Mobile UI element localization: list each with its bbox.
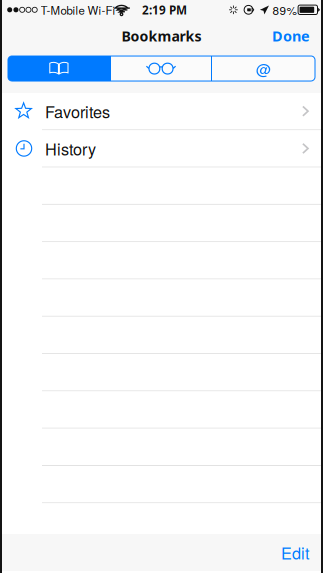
staticText: 89%	[272, 1, 296, 18]
button[interactable]: Shared Links	[212, 56, 315, 81]
button[interactable]: Edit	[281, 541, 321, 564]
button[interactable]: History	[2, 130, 321, 168]
button[interactable]: Favorites	[2, 93, 321, 130]
staticText: T-Mobile Wi-Fi	[41, 2, 116, 18]
staticText: 2:19 PM	[142, 2, 187, 18]
staticText: History	[45, 137, 96, 160]
button[interactable]: Done	[272, 26, 321, 46]
staticText: @	[256, 58, 271, 79]
staticText: Done	[272, 26, 310, 46]
staticText: Bookmarks	[121, 26, 201, 46]
button[interactable]: Bookmarks	[8, 56, 110, 81]
button[interactable]: Reading List	[110, 56, 212, 81]
staticText: Edit	[281, 541, 310, 564]
staticText: Favorites	[45, 99, 110, 123]
